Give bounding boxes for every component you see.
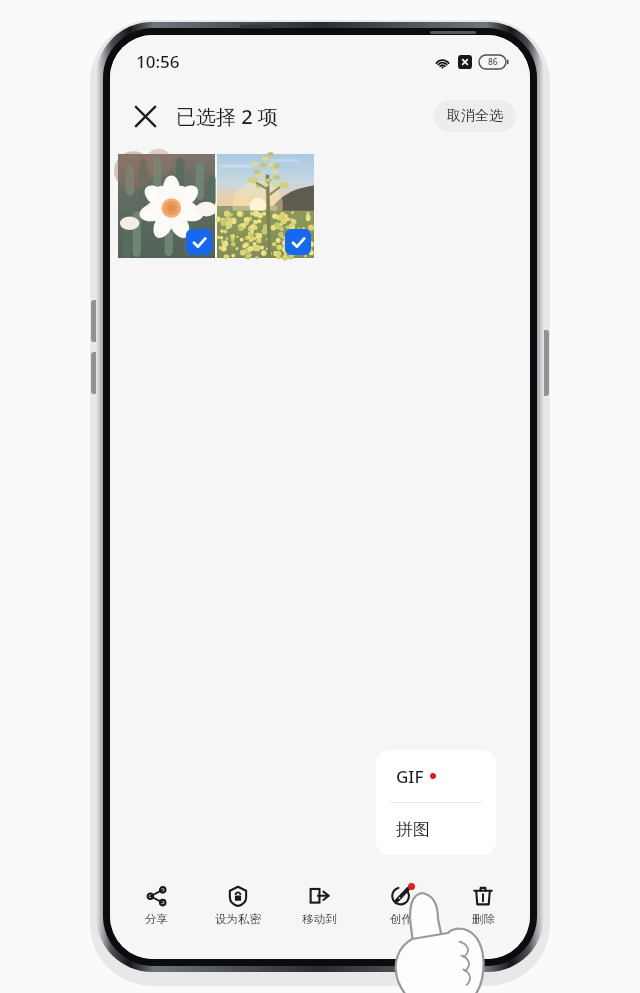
button[interactable]: 取消全选 (434, 100, 516, 132)
staticText: 移动到 (302, 912, 337, 926)
button[interactable]: GIF (376, 750, 496, 802)
staticText: 86 (488, 56, 498, 68)
staticText: 分享 (145, 912, 168, 926)
button[interactable]: 照片 (217, 154, 314, 258)
staticText: 已选择 2 项 (176, 103, 278, 130)
button[interactable]: 创作 (360, 877, 442, 933)
button[interactable]: 移动到 (278, 877, 360, 933)
button[interactable]: 删除 (442, 877, 524, 933)
button[interactable]: 照片 (118, 154, 215, 258)
button[interactable]: 拼图 (376, 803, 496, 855)
staticText: GIF (396, 765, 424, 788)
button[interactable]: 关闭 (124, 95, 166, 137)
staticText: 设为私密 (215, 912, 261, 926)
staticText: 取消全选 (447, 107, 503, 125)
staticText: 创作 (390, 912, 413, 926)
staticText: 删除 (472, 912, 495, 926)
staticText: 10:56 (136, 50, 180, 73)
button[interactable]: 分享 (116, 877, 197, 933)
staticText: 拼图 (396, 819, 430, 840)
button[interactable]: 设为私密 (197, 877, 278, 933)
